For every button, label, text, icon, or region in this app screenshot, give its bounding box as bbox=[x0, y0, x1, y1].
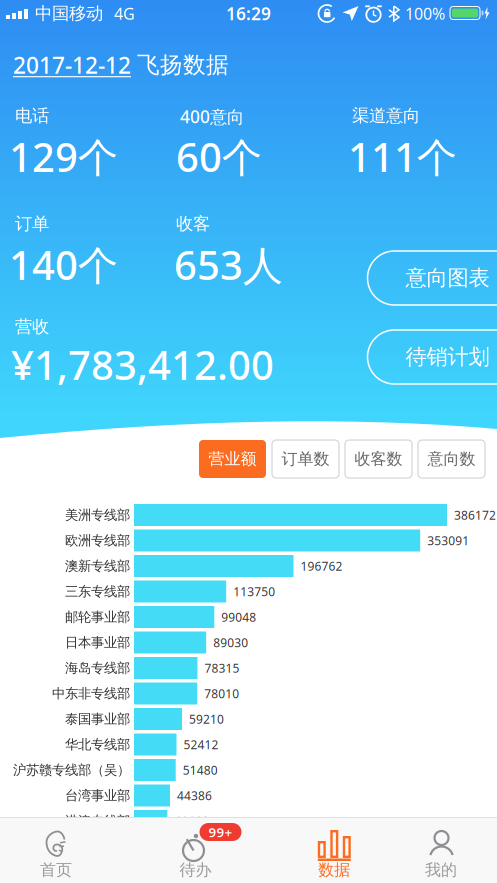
staticText: 邮轮事业部 bbox=[65, 609, 130, 625]
staticText: 营业额 bbox=[208, 449, 256, 469]
staticText: 数据 bbox=[318, 860, 350, 880]
button[interactable]: 收客数 bbox=[345, 440, 412, 478]
button[interactable]: 待销计划 bbox=[367, 330, 497, 384]
staticText: 60个 bbox=[176, 130, 262, 183]
staticText: 89030 bbox=[213, 634, 248, 650]
staticText: 353091 bbox=[427, 532, 469, 548]
staticText: 订单数 bbox=[281, 449, 329, 469]
staticText: 台湾事业部 bbox=[65, 787, 130, 804]
button[interactable]: 2017-12-12 bbox=[13, 50, 131, 80]
button[interactable]: 我的 bbox=[391, 817, 491, 883]
staticText: 52412 bbox=[183, 736, 218, 752]
staticText: 日本事业部 bbox=[65, 634, 130, 651]
staticText: 意向图表 bbox=[405, 265, 489, 291]
staticText: ¥1,783,412.00 bbox=[11, 338, 274, 391]
staticText: 16:29 bbox=[226, 2, 271, 25]
staticText: 400意向 bbox=[180, 105, 244, 128]
staticText: 泰国事业部 bbox=[65, 711, 130, 727]
staticText: 78315 bbox=[204, 660, 239, 676]
button[interactable]: 首页 bbox=[6, 817, 106, 883]
staticText: 沪苏赣专线部（吴） bbox=[13, 762, 130, 778]
staticText: 我的 bbox=[425, 860, 457, 880]
staticText: 中国移动 bbox=[35, 3, 103, 24]
staticText: 美洲专线部 bbox=[65, 507, 130, 523]
staticText: 营收 bbox=[15, 316, 49, 337]
staticText: 飞扬数据 bbox=[137, 51, 229, 79]
staticText: 待办 bbox=[179, 860, 211, 880]
button[interactable]: 数据 bbox=[284, 817, 384, 883]
staticText: 99048 bbox=[221, 609, 256, 625]
button[interactable]: 意向图表 bbox=[367, 251, 497, 305]
staticText: 129个 bbox=[9, 130, 118, 183]
button[interactable]: 意向数 bbox=[418, 440, 485, 478]
staticText: 78010 bbox=[204, 685, 239, 701]
staticText: 渠道意向 bbox=[352, 105, 420, 126]
staticText: 订单 bbox=[15, 213, 49, 234]
staticText: 欧洲专线部 bbox=[65, 532, 130, 549]
button[interactable]: 99+ bbox=[145, 817, 245, 883]
staticText: 收客数 bbox=[354, 449, 402, 469]
staticText: 140个 bbox=[9, 238, 118, 291]
staticText: 海岛专线部 bbox=[65, 660, 130, 676]
staticText: 华北专线部 bbox=[65, 736, 130, 753]
staticText: 4G bbox=[114, 3, 135, 24]
staticText: 中东非专线部 bbox=[52, 685, 130, 702]
button[interactable]: 营业额 bbox=[199, 440, 266, 478]
staticText: 收客 bbox=[176, 213, 210, 234]
button[interactable]: 订单数 bbox=[272, 440, 339, 478]
staticText: 99+ bbox=[208, 823, 232, 841]
staticText: 113750 bbox=[233, 583, 275, 599]
staticText: 100% bbox=[405, 3, 445, 24]
staticText: 196762 bbox=[300, 558, 342, 574]
staticText: 59210 bbox=[189, 711, 224, 727]
staticText: 意向数 bbox=[427, 449, 475, 469]
staticText: 111个 bbox=[348, 130, 457, 183]
staticText: 2017-12-12 bbox=[13, 50, 131, 80]
staticText: 51480 bbox=[183, 762, 218, 778]
staticText: 澳新专线部 bbox=[65, 558, 130, 574]
staticText: 653人 bbox=[174, 238, 283, 291]
staticText: 386172 bbox=[454, 507, 496, 523]
staticText: 三东专线部 bbox=[65, 583, 130, 600]
staticText: 首页 bbox=[40, 860, 72, 880]
staticText: 44386 bbox=[177, 787, 212, 803]
staticText: 港澳专线部 bbox=[65, 813, 130, 829]
staticText: 41112 bbox=[174, 813, 209, 829]
staticText: 待销计划 bbox=[405, 344, 489, 370]
staticText: 电话 bbox=[15, 105, 49, 126]
